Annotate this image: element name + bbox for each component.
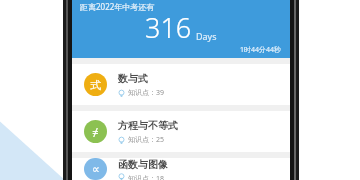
staticText: 知识点：18 — [128, 174, 165, 180]
staticText: 方程与不等式 — [118, 119, 178, 132]
other: Knowledge points — [118, 137, 125, 144]
staticText: 知识点：39 — [128, 88, 165, 98]
staticText: 知识点：25 — [128, 135, 165, 145]
staticText: 式 — [90, 78, 101, 92]
button[interactable]: 式 — [72, 64, 290, 105]
other: Knowledge points — [118, 90, 125, 97]
staticText: ≠ — [92, 124, 99, 139]
staticText: ∝ — [92, 163, 100, 176]
staticText: Days — [196, 30, 217, 42]
button[interactable]: ≠ — [72, 111, 290, 152]
button[interactable]: 距离2022年中考还有 — [72, 0, 290, 58]
button[interactable]: ∝ — [72, 158, 290, 180]
other: Knowledge points — [118, 174, 125, 180]
staticText: 距离2022年中考还有 — [80, 1, 155, 12]
staticText: 316 — [145, 9, 192, 46]
staticText: 数与式 — [118, 72, 148, 85]
staticText: 函数与图像 — [118, 158, 168, 171]
staticText: 1时44分44秒 — [240, 45, 282, 55]
